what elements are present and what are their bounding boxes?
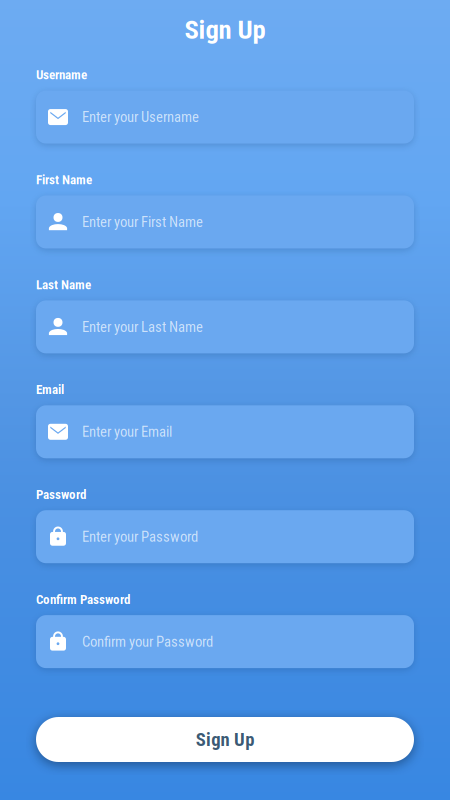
- staticText: Last Name: [36, 277, 91, 292]
- staticText: Confirm Password: [36, 592, 130, 607]
- staticText: Enter your Username: [82, 108, 199, 126]
- staticText: Enter your Email: [82, 423, 172, 440]
- button[interactable]: Enter your Username: [36, 91, 414, 144]
- button[interactable]: Enter your Last Name: [36, 300, 414, 353]
- button[interactable]: Enter your First Name: [36, 195, 414, 248]
- staticText: Password: [36, 487, 86, 502]
- staticText: First Name: [36, 172, 92, 187]
- staticText: Email: [36, 382, 64, 397]
- staticText: Username: [36, 67, 87, 83]
- staticText: Enter your First Name: [82, 213, 203, 231]
- staticText: Confirm your Password: [82, 633, 213, 650]
- staticText: Sign Up: [196, 729, 254, 750]
- staticText: Enter your Password: [82, 528, 198, 545]
- staticText: Enter your Last Name: [82, 318, 203, 335]
- staticText: Sign Up: [184, 14, 265, 45]
- button[interactable]: Enter your Email: [36, 405, 414, 458]
- button[interactable]: Confirm your Password: [36, 615, 414, 668]
- button[interactable]: Sign Up: [36, 717, 414, 762]
- button[interactable]: Enter your Password: [36, 510, 414, 563]
